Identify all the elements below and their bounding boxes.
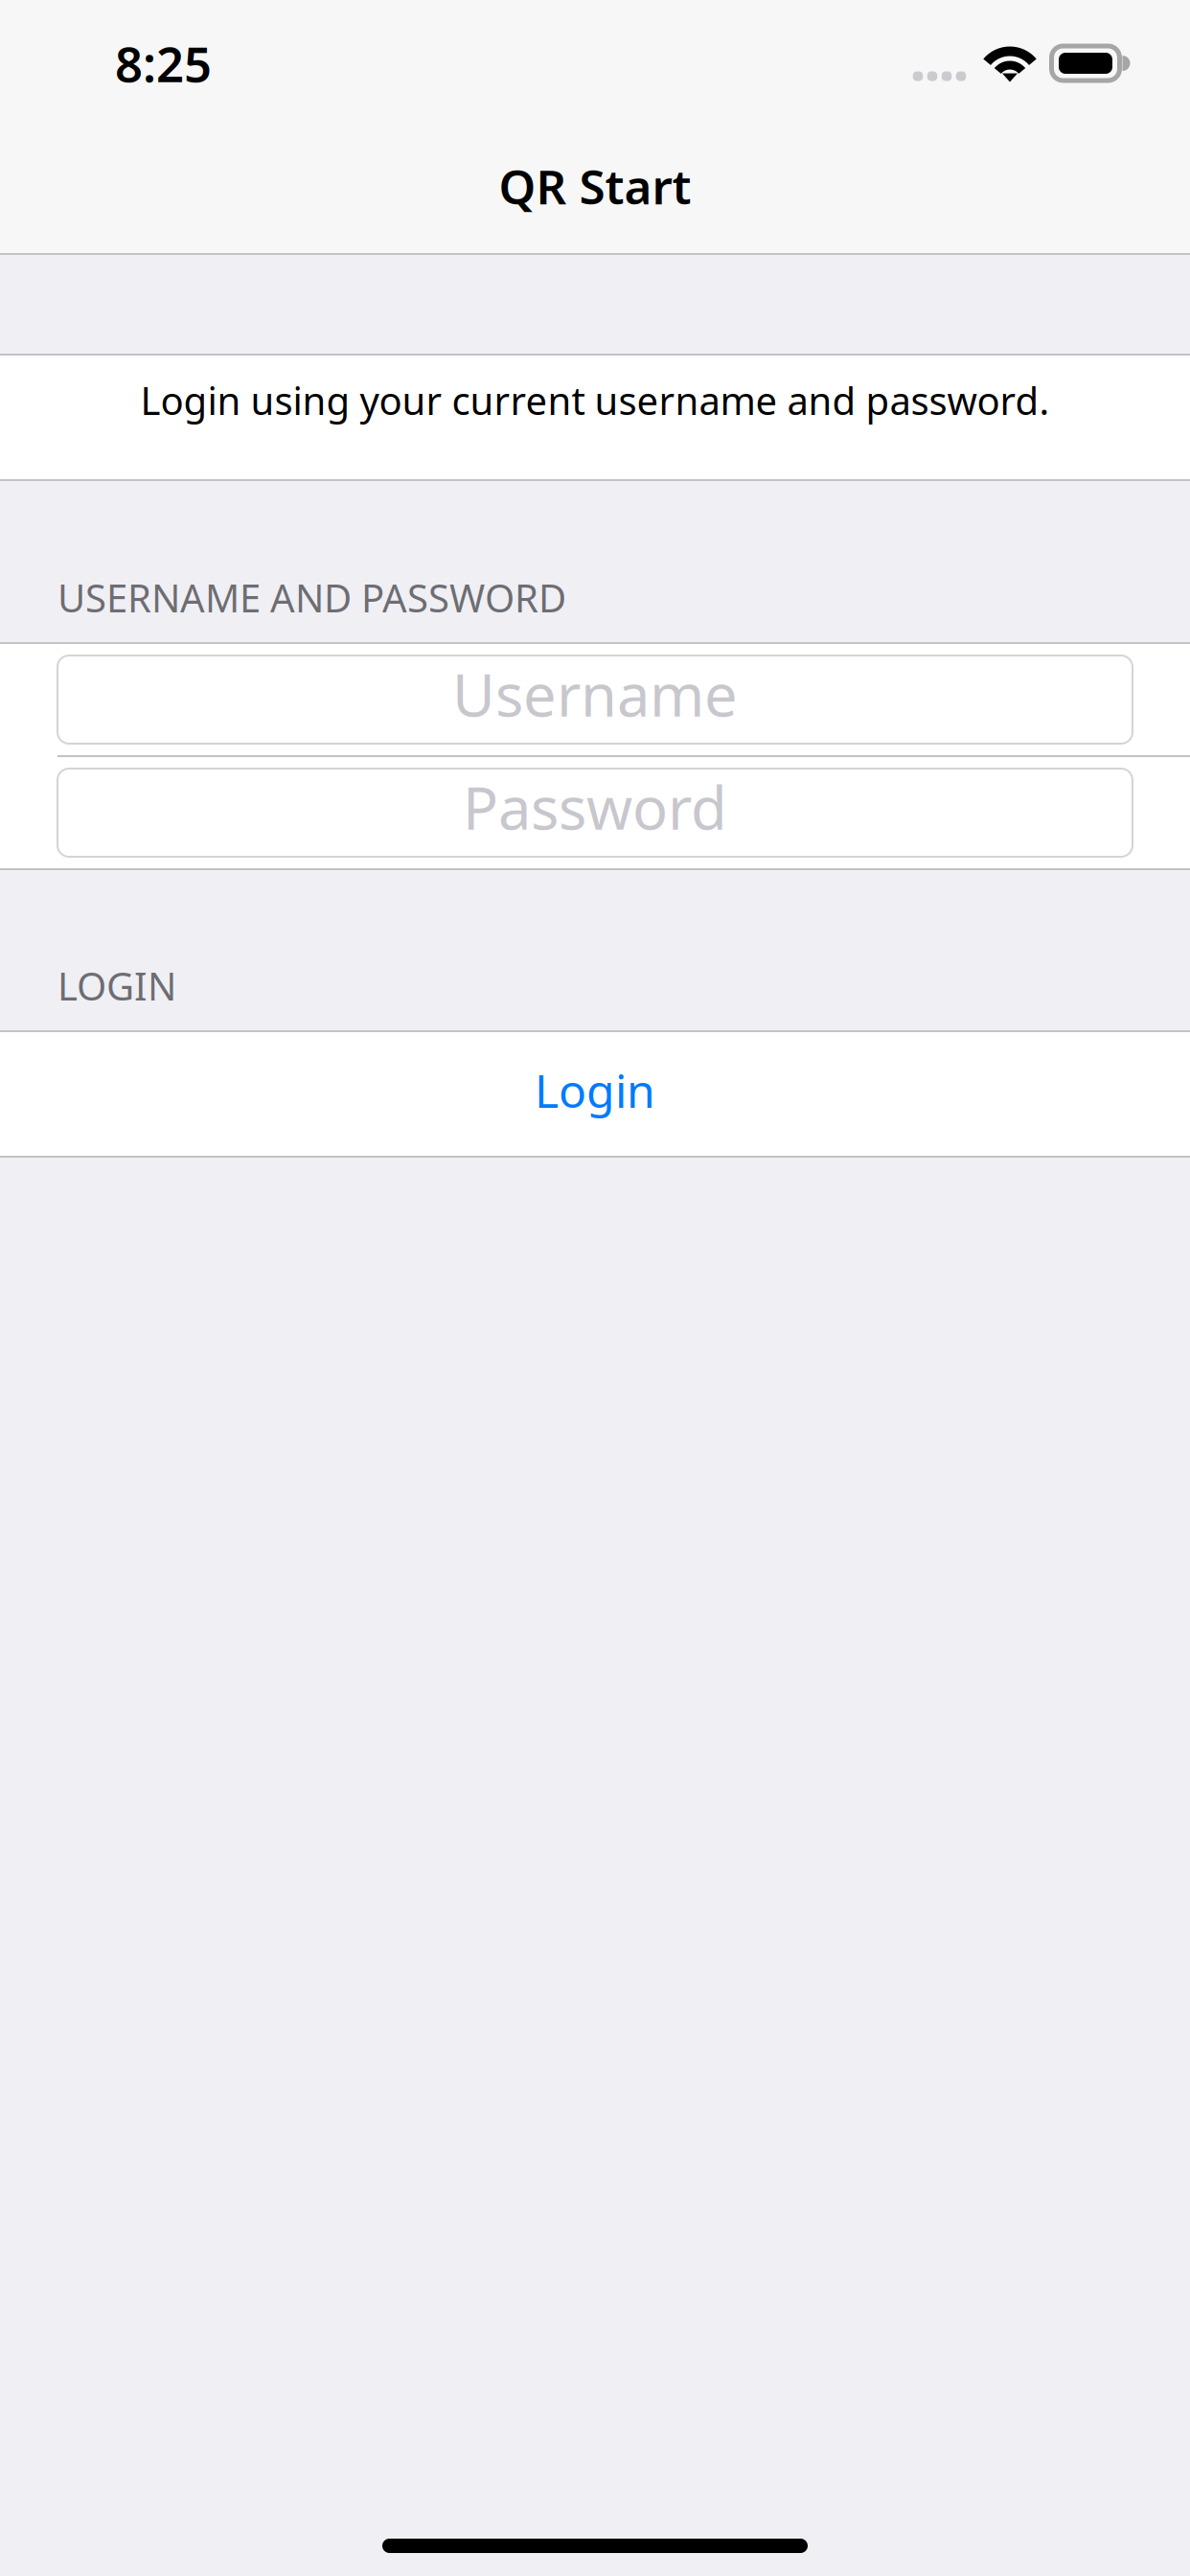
staticText: 8:25 — [115, 31, 212, 96]
staticText: USERNAME AND PASSWORD — [57, 572, 566, 623]
button[interactable]: Password — [0, 757, 1190, 868]
staticText: Login — [535, 1060, 655, 1121]
staticText: Username — [452, 655, 738, 733]
staticText: Password — [463, 768, 727, 846]
staticText: LOGIN — [57, 960, 176, 1011]
button[interactable]: Username — [0, 644, 1190, 755]
button[interactable]: Login — [0, 1032, 1190, 1156]
staticText: Login using your current username and pa… — [140, 375, 1050, 425]
staticText: QR Start — [499, 154, 691, 217]
